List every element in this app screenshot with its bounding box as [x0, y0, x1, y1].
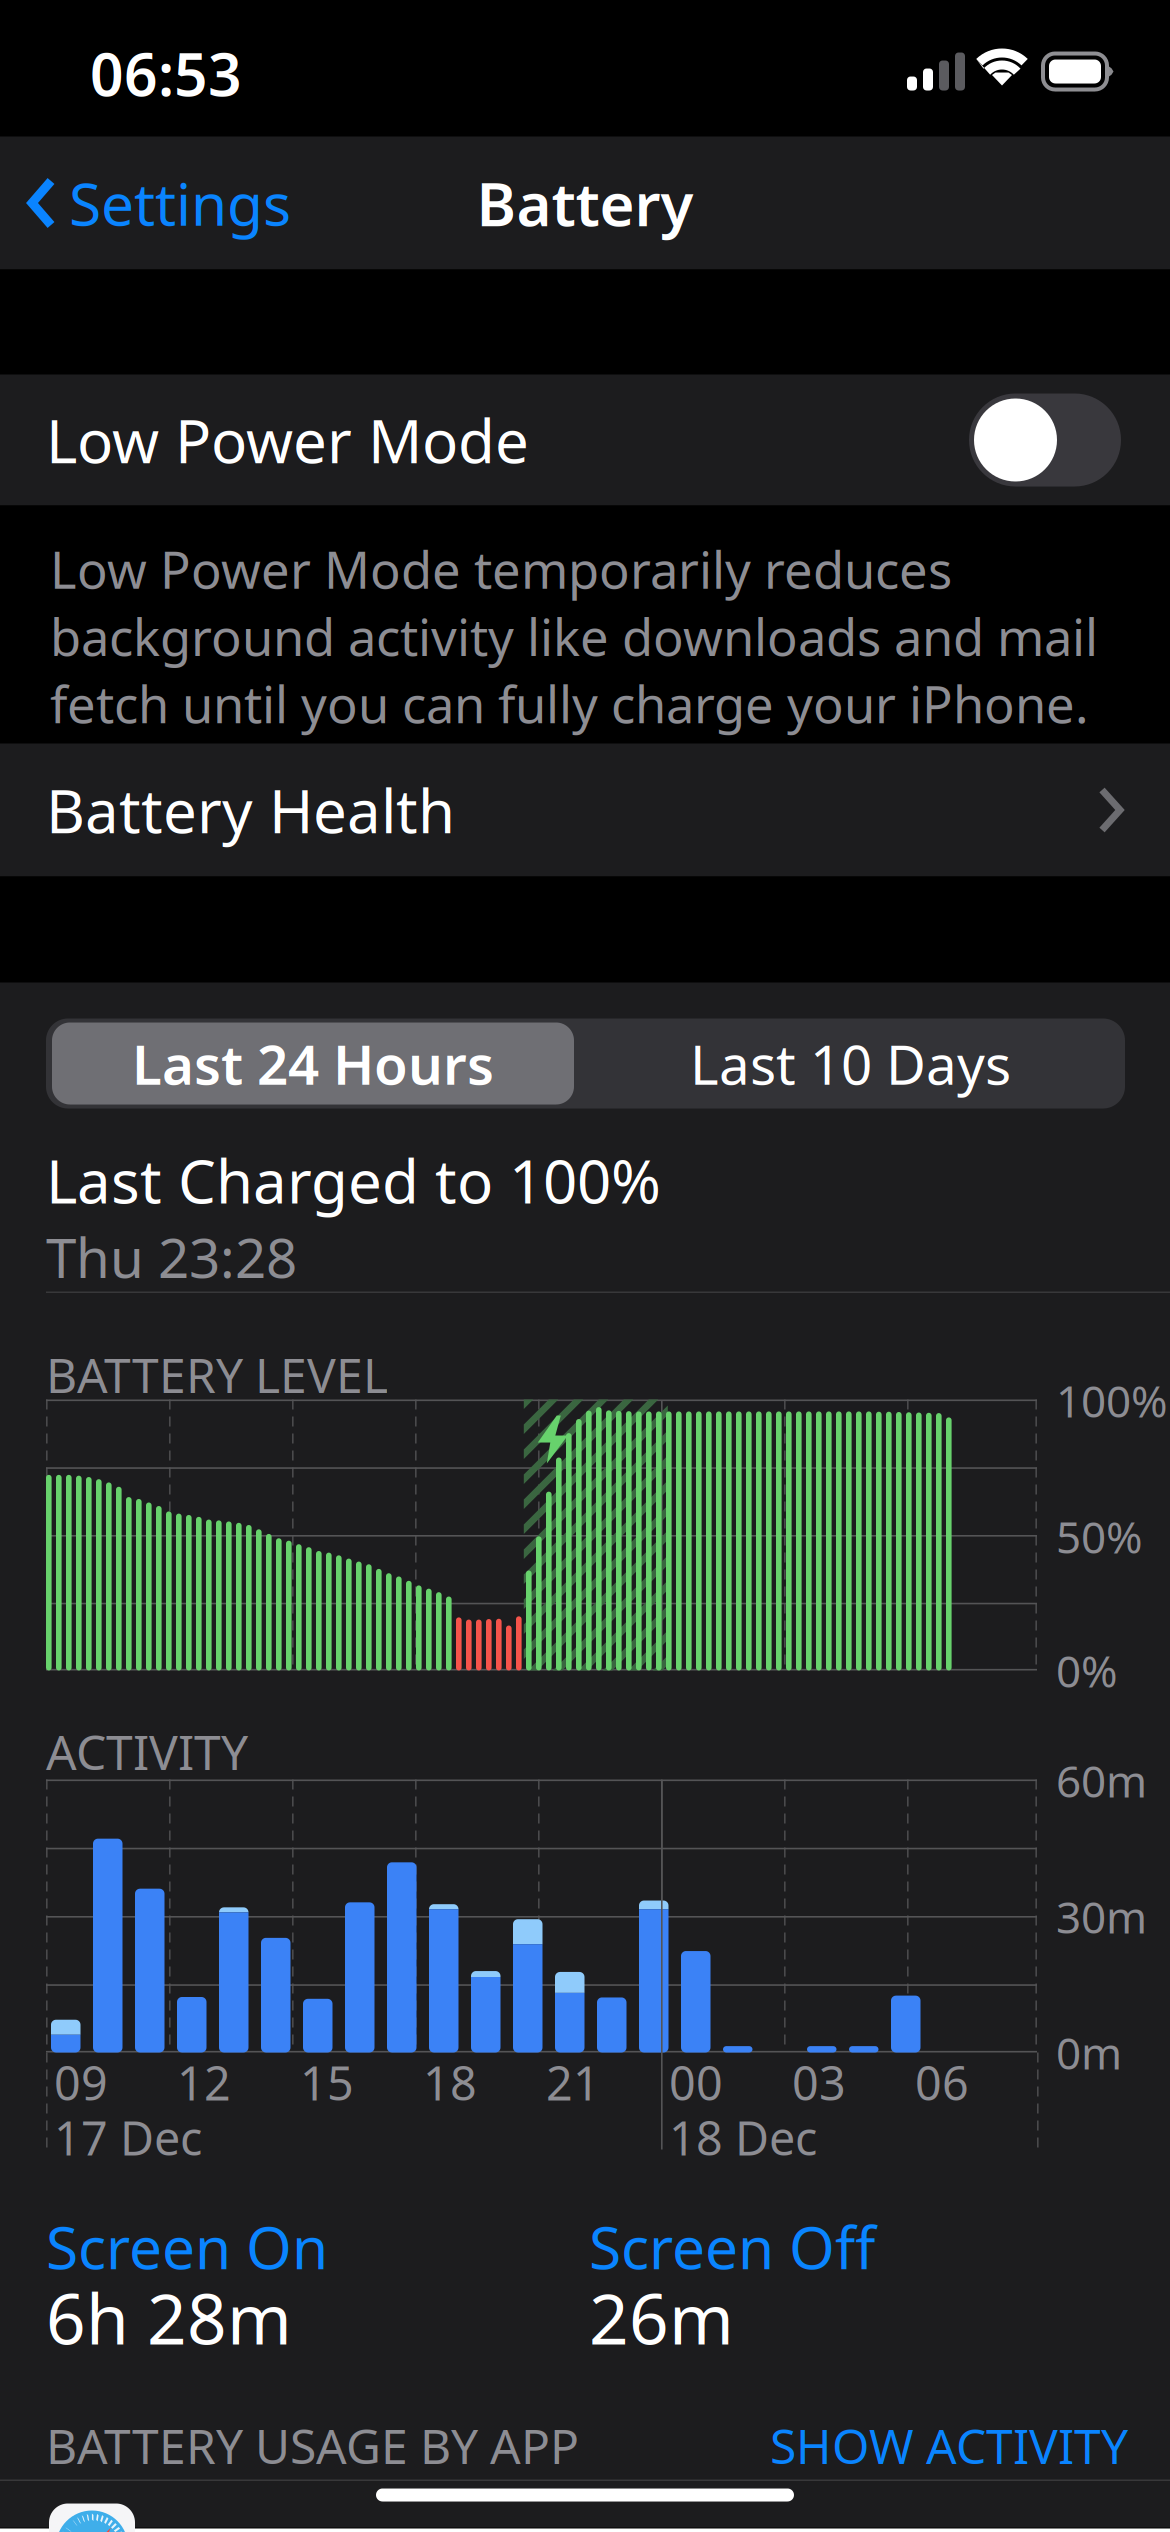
staticText: Thu 23:28	[46, 1220, 297, 1293]
button[interactable]: SHOW ACTIVITY	[770, 2405, 1128, 2485]
staticText: BATTERY USAGE BY APP	[46, 2413, 579, 2477]
staticText: 50%	[1056, 1507, 1143, 1566]
staticText: 0%	[1056, 1641, 1118, 1700]
staticText: 30m	[1056, 1887, 1147, 1946]
staticText: Battery	[476, 163, 693, 243]
staticText: Low Power Mode temporarily reduces backg…	[50, 535, 1098, 737]
staticText: Screen On	[46, 2207, 328, 2285]
staticText: Screen Off	[589, 2207, 875, 2285]
staticText: Last 10 Days	[690, 1027, 1011, 1100]
staticText: 100%	[1056, 1371, 1168, 1430]
staticText: 15	[300, 2051, 354, 2113]
staticText: 12	[177, 2051, 231, 2113]
staticText: 06	[915, 2051, 969, 2113]
staticText: 03	[792, 2051, 846, 2113]
staticText: Last Charged to 100%	[46, 1140, 661, 1220]
staticText: Settings	[69, 164, 291, 242]
staticText: 60m	[1056, 1751, 1147, 1810]
staticText: Low Power Mode	[46, 400, 529, 480]
staticText: 09	[54, 2051, 108, 2113]
staticText: ACTIVITY	[46, 1719, 248, 1783]
staticText: Last 24 Hours	[132, 1027, 494, 1100]
staticText: 06:53	[90, 34, 242, 112]
staticText: 18 Dec	[669, 2106, 817, 2168]
button[interactable]: Last 24 Hours	[48, 1018, 578, 1108]
staticText: BATTERY LEVEL	[46, 1342, 388, 1406]
button[interactable]: Last 10 Days	[578, 1018, 1123, 1108]
button[interactable]: Low Power Mode	[969, 393, 1121, 486]
staticText: 17 Dec	[54, 2106, 202, 2168]
staticText: 18	[423, 2051, 477, 2113]
button[interactable]: Settings	[0, 136, 313, 269]
staticText: 0m	[1056, 2023, 1122, 2082]
staticText: Battery Health	[46, 770, 455, 850]
staticText: 00	[669, 2051, 723, 2113]
staticText: 26m	[589, 2271, 734, 2364]
staticText: SHOW ACTIVITY	[770, 2413, 1128, 2477]
button[interactable]: Battery Health	[0, 743, 1170, 876]
staticText: 6h 28m	[46, 2271, 292, 2364]
staticText: 21	[546, 2051, 600, 2113]
